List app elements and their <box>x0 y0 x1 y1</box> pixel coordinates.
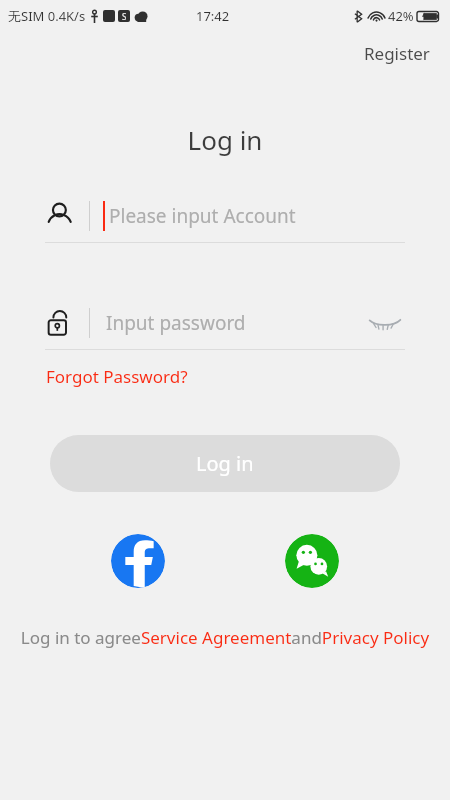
staticText: S <box>122 11 127 22</box>
button[interactable]: Log in to agreeService AgreementandPriva… <box>0 626 450 649</box>
staticText: 42% <box>388 7 414 25</box>
staticText: Input password <box>106 310 246 336</box>
staticText: Log in to agreeService AgreementandPriva… <box>14 626 436 649</box>
button[interactable]: Log in with Facebook <box>111 534 165 588</box>
staticText: Forgot Password? <box>46 365 188 388</box>
button[interactable]: Input password <box>45 297 405 349</box>
button[interactable]: Register <box>344 34 450 73</box>
staticText: 17:42 <box>196 7 230 25</box>
button[interactable]: Show password <box>365 303 405 343</box>
staticText: 无SIM 0.4K/s <box>8 7 86 25</box>
button[interactable]: Log in with WeChat <box>285 534 339 588</box>
button[interactable]: Please input Account <box>45 190 405 242</box>
staticText: Log in <box>0 122 450 157</box>
staticText: Log in <box>196 450 254 477</box>
staticText: Please input Account <box>109 203 296 229</box>
button[interactable]: Forgot Password? <box>44 362 190 391</box>
button[interactable]: Log in <box>50 435 400 492</box>
staticText: Register <box>364 42 430 65</box>
